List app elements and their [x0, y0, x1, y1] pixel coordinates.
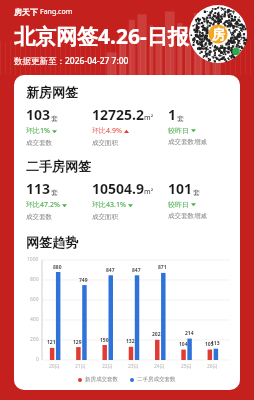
staticText: 200	[30, 336, 39, 343]
staticText: 880	[53, 264, 62, 271]
staticText: Fang.com	[40, 7, 73, 17]
staticText: 600	[30, 296, 39, 303]
staticText: 环比43.1%	[92, 200, 126, 210]
staticText: 103	[26, 105, 51, 124]
staticText: 套	[177, 114, 184, 123]
staticText: 25日	[181, 363, 192, 370]
staticText: 环比4.9%	[92, 126, 122, 136]
staticText: 132	[126, 338, 135, 345]
staticText: 12725.2	[92, 105, 144, 124]
staticText: 房	[212, 26, 225, 42]
button[interactable]: 113	[26, 179, 92, 221]
staticText: 0	[36, 356, 39, 363]
staticText: 400	[30, 316, 39, 323]
staticText: 113	[26, 179, 51, 198]
staticText: 新房成交套数	[85, 376, 118, 383]
staticText: 202	[152, 331, 161, 338]
staticText: 套	[193, 188, 200, 197]
staticText: 22日	[102, 363, 113, 370]
staticText: 成交套数增减	[168, 138, 207, 146]
staticText: 23日	[128, 363, 139, 370]
staticText: 104	[179, 341, 188, 348]
staticText: 1	[168, 105, 177, 124]
staticText: 套	[51, 114, 58, 123]
button[interactable]: 扫码关注二维码	[189, 5, 247, 63]
staticText: 北京网签4.26-日报	[14, 22, 189, 51]
staticText: 成交面积	[92, 139, 118, 147]
staticText: 成交套数增减	[168, 212, 207, 220]
staticText: 105	[205, 341, 214, 348]
staticText: 1000	[27, 256, 39, 263]
staticText: 20日	[49, 363, 60, 370]
staticText: 环比47.2%	[26, 200, 60, 210]
staticText: 113	[211, 340, 220, 347]
staticText: 二手房网签	[26, 158, 91, 174]
staticText: 800	[30, 276, 39, 283]
staticText: 数据更新至：2026-04-27 7:00	[14, 55, 129, 67]
staticText: 成交套数	[26, 139, 52, 147]
staticText: 121	[47, 339, 56, 346]
staticText: 847	[106, 267, 115, 274]
staticText: 10504.9	[92, 179, 144, 198]
staticText: 214	[185, 330, 194, 337]
staticText: 套	[51, 188, 58, 197]
staticText: m²	[144, 113, 154, 123]
staticText: 847	[132, 267, 141, 274]
staticText: 新房网签	[26, 84, 78, 100]
staticText: 房天下	[14, 7, 38, 17]
button[interactable]: 12725.2	[92, 105, 168, 147]
staticText: 749	[79, 277, 88, 284]
button[interactable]: 10504.9	[92, 179, 168, 221]
staticText: 网签趋势	[26, 234, 78, 250]
staticText: 较昨日	[168, 200, 189, 209]
staticText: m²	[144, 187, 154, 197]
staticText: 871	[158, 264, 167, 271]
staticText: 26日	[207, 363, 218, 370]
staticText: 21日	[75, 363, 86, 370]
button[interactable]: 103	[26, 105, 92, 147]
staticText: 24日	[154, 363, 165, 370]
staticText: 成交套数	[26, 213, 52, 221]
button[interactable]: 二手房成交套数	[130, 376, 176, 383]
staticText: 环比1%	[26, 126, 50, 136]
button[interactable]: 新房成交套数	[78, 376, 118, 383]
staticText: 150	[100, 337, 109, 344]
staticText: 129	[73, 339, 82, 346]
staticText: 成交面积	[92, 213, 118, 221]
staticText: 二手房成交套数	[137, 376, 176, 383]
button[interactable]: 101	[168, 179, 234, 220]
staticText: 较昨日	[168, 126, 189, 135]
button[interactable]: 1	[168, 105, 234, 146]
staticText: 101	[168, 179, 193, 198]
